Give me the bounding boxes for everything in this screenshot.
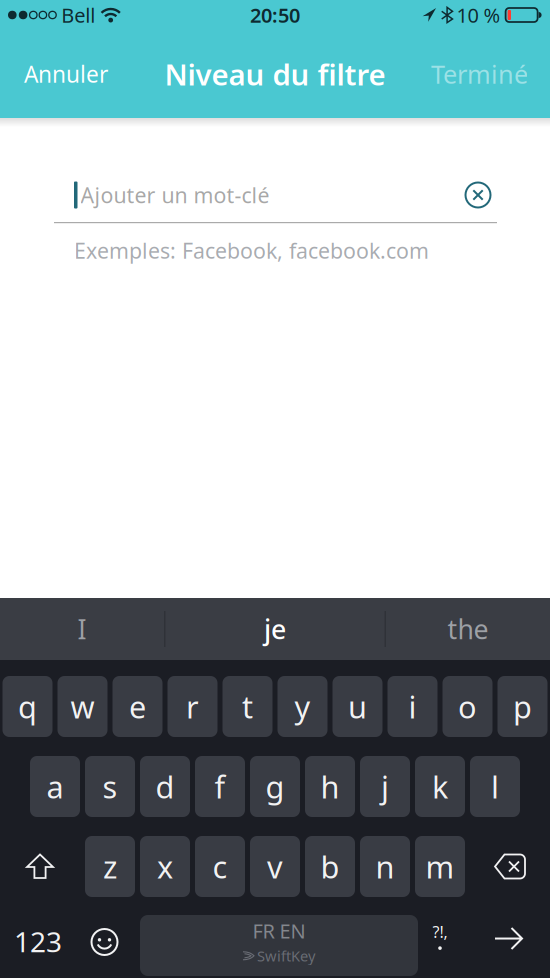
staticText: t	[242, 686, 253, 727]
button[interactable]: I	[0, 598, 164, 660]
staticText: z	[103, 846, 117, 887]
staticText: c	[212, 846, 227, 887]
staticText: the	[447, 611, 488, 647]
staticText: ?!,	[432, 921, 447, 942]
button[interactable]: s	[85, 756, 135, 817]
button[interactable]: the	[386, 598, 550, 660]
button[interactable]: y	[277, 676, 327, 737]
staticText: l	[491, 766, 499, 807]
button[interactable]: 123	[0, 915, 76, 976]
button[interactable]: w	[57, 676, 107, 737]
button[interactable]: t	[222, 676, 272, 737]
button[interactable]: ?!,	[418, 915, 462, 976]
button[interactable]: z	[85, 836, 135, 897]
staticText: v	[267, 846, 283, 887]
button[interactable]: q	[2, 676, 52, 737]
button[interactable]: Majuscule	[0, 836, 80, 897]
button[interactable]: p	[497, 676, 547, 737]
staticText: I	[77, 611, 86, 647]
button[interactable]: l	[470, 756, 520, 817]
staticText: b	[320, 846, 339, 887]
button[interactable]: g	[250, 756, 300, 817]
staticText: y	[294, 686, 310, 727]
button[interactable]: b	[305, 836, 355, 897]
staticText: q	[18, 686, 37, 727]
staticText: Exemples: Facebook, facebook.com	[74, 236, 429, 264]
staticText: 10 %	[457, 2, 501, 28]
button[interactable]: Supprimer	[470, 836, 550, 897]
button[interactable]: m	[415, 836, 465, 897]
button[interactable]: i	[387, 676, 437, 737]
staticText: m	[425, 846, 454, 887]
staticText: g	[265, 766, 284, 807]
staticText: k	[432, 766, 448, 807]
staticText: r	[186, 686, 199, 727]
staticText: 20:50	[250, 2, 300, 28]
staticText: FR EN	[252, 917, 305, 944]
button[interactable]: Terminé	[431, 57, 550, 91]
staticText: 123	[14, 923, 62, 960]
staticText: p	[513, 686, 532, 727]
staticText: Bell	[61, 2, 95, 28]
staticText: a	[46, 766, 63, 807]
button[interactable]: d	[140, 756, 190, 817]
staticText: s	[102, 766, 117, 807]
staticText: j	[381, 766, 389, 807]
staticText: i	[408, 686, 416, 727]
staticText: Annuler	[24, 59, 108, 89]
button[interactable]: a	[30, 756, 80, 817]
button[interactable]: Espace	[140, 915, 418, 976]
staticText: d	[155, 766, 174, 807]
staticText: je	[264, 611, 286, 647]
button[interactable]: k	[415, 756, 465, 817]
button[interactable]: f	[195, 756, 245, 817]
staticText: Ajouter un mot-clé	[80, 181, 269, 209]
button[interactable]: n	[360, 836, 410, 897]
staticText: SwiftKey	[257, 946, 315, 965]
button[interactable]: Ajouter un mot-clé	[0, 178, 461, 212]
button[interactable]: j	[360, 756, 410, 817]
staticText: u	[348, 686, 367, 727]
button[interactable]: v	[250, 836, 300, 897]
button[interactable]: Effacer le texte	[461, 178, 495, 212]
button[interactable]: Émojis	[76, 915, 133, 976]
staticText: f	[214, 766, 225, 807]
button[interactable]: je	[165, 598, 384, 660]
button[interactable]: h	[305, 756, 355, 817]
staticText: x	[157, 846, 173, 887]
staticText: e	[129, 686, 146, 727]
staticText: Terminé	[431, 57, 528, 91]
button[interactable]: e	[112, 676, 162, 737]
button[interactable]: Retour	[462, 915, 550, 976]
button[interactable]: x	[140, 836, 190, 897]
button[interactable]: Annuler	[0, 59, 108, 89]
button[interactable]: r	[167, 676, 217, 737]
staticText: h	[320, 766, 339, 807]
button[interactable]: o	[442, 676, 492, 737]
button[interactable]: u	[332, 676, 382, 737]
staticText: n	[375, 846, 394, 887]
staticText: w	[70, 686, 94, 727]
staticText: o	[458, 686, 477, 727]
staticText: Niveau du filtre	[164, 54, 385, 93]
button[interactable]: c	[195, 836, 245, 897]
